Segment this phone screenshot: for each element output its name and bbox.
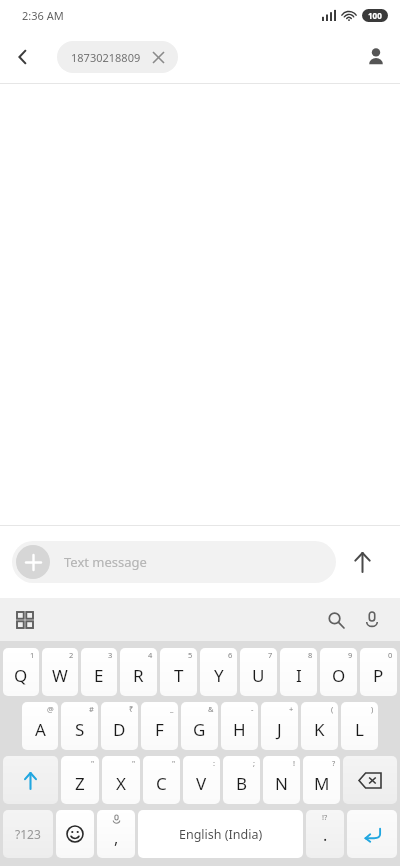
button[interactable]: !? [306,810,344,858]
button[interactable]: 5 [160,648,197,696]
other: Remove recipient [153,52,164,63]
staticText: @ [47,704,54,714]
staticText: & [208,704,214,714]
button[interactable]: # [61,702,98,750]
button[interactable]: ₹ [101,702,138,750]
staticText: J [277,718,282,741]
staticText: !? [322,812,328,822]
staticText: K [314,718,325,741]
button[interactable]: Shift [3,756,58,804]
button[interactable]: 4 [120,648,157,696]
button[interactable]: Attach [12,541,336,583]
staticText: Y [214,664,224,687]
button[interactable]: Search [318,602,354,638]
button[interactable]: ?123 [3,810,53,858]
staticText: ? [332,758,336,768]
button[interactable]: 3 [81,648,117,696]
button[interactable]: 7 [240,648,277,696]
staticText: : [213,758,216,768]
button[interactable]: Contacts [352,33,400,81]
button[interactable]: " [61,756,99,804]
staticText: ₹ [129,704,134,714]
staticText: N [275,772,288,795]
button[interactable]: ( [301,702,338,750]
button[interactable]: " [143,756,180,804]
staticText: G [193,718,206,741]
staticText: 18730218809 [71,50,141,65]
button[interactable]: 8 [280,648,317,696]
staticText: 2:36 AM [22,8,64,23]
staticText: Q [14,664,28,687]
button[interactable]: _ [141,702,178,750]
staticText: # [89,704,94,714]
staticText: 9 [348,650,353,660]
staticText: Z [75,772,85,795]
staticText: 0 [388,650,393,660]
staticText: 1 [30,650,35,660]
staticText: 4 [148,650,153,660]
button[interactable]: Back [0,34,46,80]
button[interactable]: Enter [347,810,397,858]
button[interactable]: Backspace [343,756,397,804]
button[interactable]: , [97,810,135,858]
staticText: 2 [69,650,74,660]
staticText: T [174,664,184,687]
button[interactable]: Attach [16,545,50,579]
staticText: V [196,772,207,795]
button[interactable]: 6 [200,648,237,696]
staticText: D [113,718,126,741]
staticText: - [251,704,254,714]
button[interactable]: 1 [3,648,39,696]
staticText: ?123 [15,826,41,842]
staticText: . [323,824,328,846]
staticText: R [133,664,144,687]
staticText: ) [371,704,374,714]
button[interactable]: ? [303,756,340,804]
button[interactable]: English (India) [138,810,303,858]
staticText: Text message [64,553,147,571]
staticText: " [132,758,136,768]
staticText: H [233,718,246,741]
button[interactable]: ! [263,756,300,804]
staticText: + [289,704,294,714]
staticText: 6 [228,650,233,660]
staticText: I [296,664,302,687]
staticText: English (India) [179,826,263,843]
button[interactable]: + [261,702,298,750]
button[interactable]: : [183,756,220,804]
staticText: 8 [308,650,313,660]
staticText: ; [253,758,256,768]
staticText: W [52,664,68,687]
staticText: X [116,772,126,795]
staticText: B [236,772,248,795]
button[interactable]: Keyboard menu [8,603,42,637]
button[interactable]: 2 [42,648,78,696]
staticText: _ [170,704,174,714]
button[interactable]: & [181,702,218,750]
button[interactable]: Voice input [354,602,390,638]
button[interactable]: - [221,702,258,750]
staticText: M [314,772,330,795]
button[interactable]: @ [22,702,58,750]
staticText: " [172,758,176,768]
staticText: O [332,664,346,687]
button[interactable]: 9 [320,648,357,696]
button[interactable]: 0 [360,648,397,696]
staticText: A [35,718,46,741]
staticText: L [355,718,364,741]
staticText: 3 [108,650,113,660]
button[interactable]: 18730218809 [57,41,178,73]
button[interactable]: ; [223,756,260,804]
staticText: , [114,827,119,849]
button[interactable]: Emoji [56,810,94,858]
staticText: P [373,664,384,687]
staticText: 5 [188,650,193,660]
staticText: ( [331,704,334,714]
staticText: " [91,758,95,768]
button[interactable]: " [102,756,140,804]
staticText: U [252,664,265,687]
button[interactable]: ) [341,702,378,750]
button[interactable]: Send [336,536,388,588]
staticText: F [155,718,164,741]
staticText: C [156,772,167,795]
